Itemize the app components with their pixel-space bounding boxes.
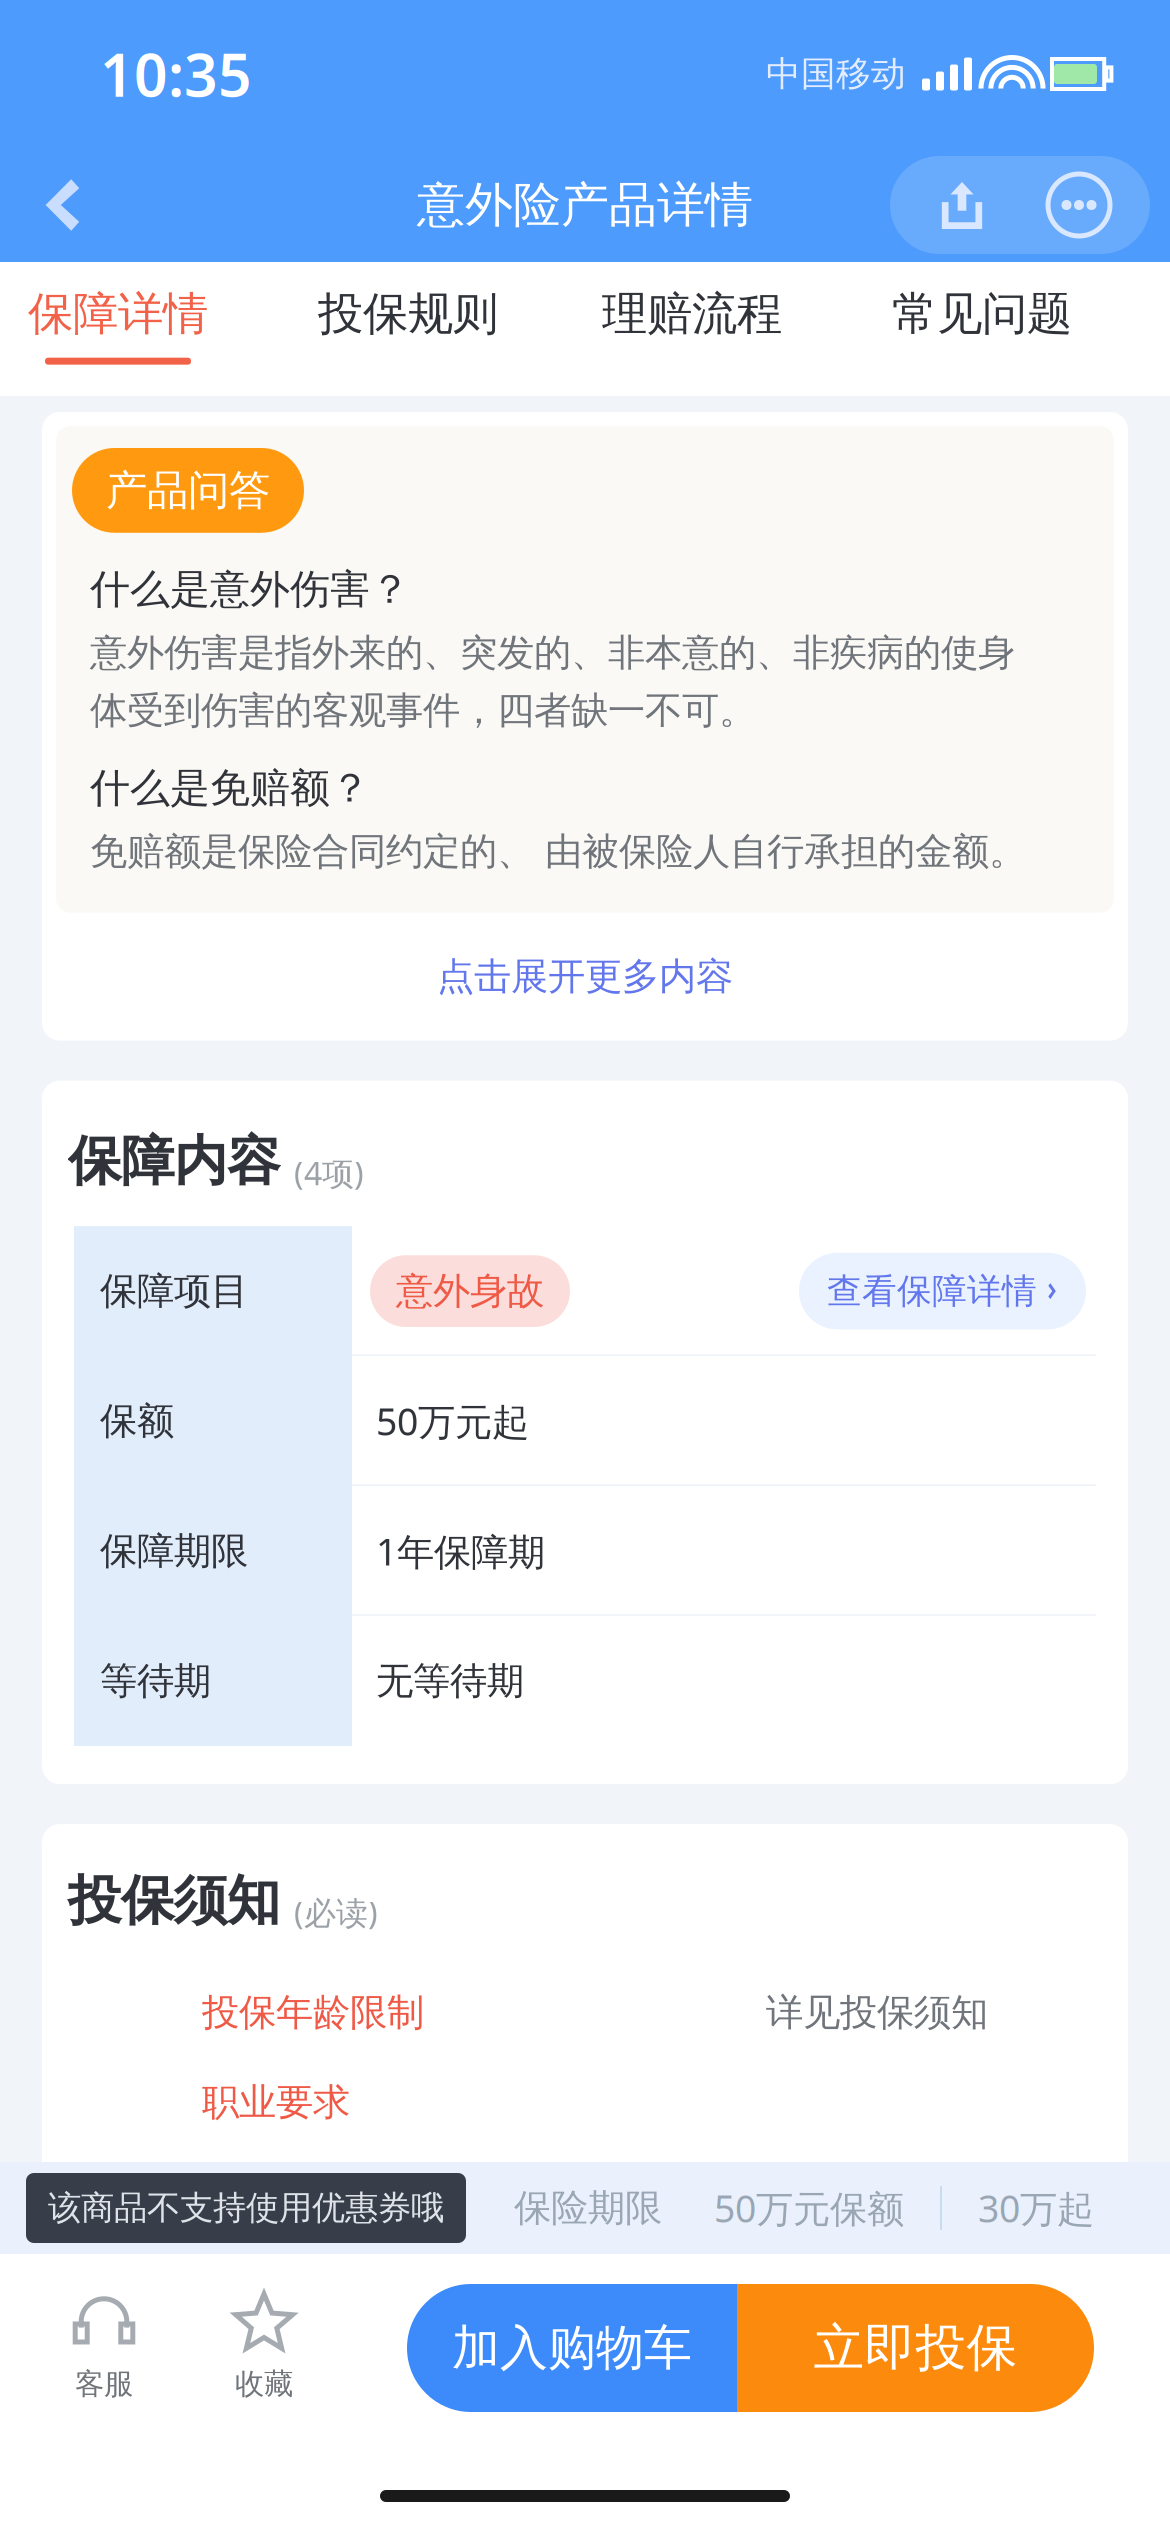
staticText: 意外险产品详情 bbox=[417, 175, 753, 234]
button[interactable]: Share bbox=[890, 157, 1020, 253]
button[interactable]: 常见问题 bbox=[804, 262, 1160, 396]
button[interactable]: 收藏 bbox=[184, 2263, 344, 2433]
staticText: 50万元起 bbox=[376, 1396, 529, 1446]
staticText: 产品问答 bbox=[106, 465, 270, 516]
staticText: 意外伤害是指外来的、突发的、非本意的、非疾病的使身 bbox=[90, 630, 1015, 676]
staticText: 1年保障期 bbox=[376, 1526, 545, 1576]
staticText: (必读) bbox=[294, 1891, 378, 1934]
staticText: 保障详情 bbox=[28, 286, 208, 342]
button[interactable]: 保障详情 bbox=[0, 262, 236, 396]
staticText: 10:35 bbox=[100, 35, 252, 113]
staticText: 该商品不支持使用优惠券哦 bbox=[48, 2187, 444, 2228]
staticText: 加入购物车 bbox=[452, 2318, 692, 2377]
staticText: 30万起 bbox=[978, 2183, 1094, 2233]
staticText: 详见投保须知 bbox=[766, 1990, 988, 2035]
staticText: 投保须知 bbox=[68, 1868, 280, 1934]
staticText: 理赔流程 bbox=[602, 286, 782, 342]
staticText: 常见问题 bbox=[892, 286, 1072, 342]
staticText: 保障期限 bbox=[100, 1528, 248, 1574]
staticText: 投保年龄限制 bbox=[202, 1990, 424, 2035]
staticText: 客服 bbox=[75, 2366, 133, 2402]
button[interactable]: 产品问答 bbox=[56, 426, 304, 533]
staticText: 50万元保额 bbox=[714, 2183, 904, 2233]
staticText: 保障项目 bbox=[100, 1268, 248, 1314]
staticText: 体受到伤害的客观事件，四者缺一不可。 bbox=[90, 688, 756, 734]
staticText: 投保规则 bbox=[318, 286, 498, 342]
button[interactable]: 点击展开更多内容 bbox=[85, 913, 1085, 1041]
staticText: 中国移动 bbox=[766, 53, 906, 95]
staticText: (4项) bbox=[294, 1152, 364, 1194]
staticText: 什么是意外伤害？ bbox=[90, 565, 410, 614]
button[interactable]: Back bbox=[0, 151, 116, 259]
button[interactable]: 立即投保 bbox=[737, 2284, 1094, 2412]
button[interactable]: 投保规则 bbox=[236, 262, 580, 396]
staticText: 职业要求 bbox=[202, 2079, 350, 2125]
staticText: 什么是免赔额？ bbox=[90, 764, 370, 813]
staticText: 意外身故 bbox=[396, 1268, 544, 1314]
button[interactable]: 查看保障详情 bbox=[799, 1253, 1086, 1329]
staticText: 保障内容 bbox=[68, 1129, 280, 1194]
button[interactable]: More bbox=[1020, 156, 1150, 254]
staticText: 点击展开更多内容 bbox=[437, 954, 733, 1000]
staticText: 立即投保 bbox=[813, 2317, 1017, 2379]
staticText: 无等待期 bbox=[376, 1658, 524, 1704]
staticText: 收藏 bbox=[235, 2366, 293, 2402]
staticText: 查看保障详情 bbox=[827, 1270, 1037, 1312]
button[interactable]: 理赔流程 bbox=[580, 262, 804, 396]
button[interactable]: 加入购物车 bbox=[407, 2284, 737, 2412]
button[interactable]: 客服 bbox=[24, 2263, 184, 2433]
staticText: 免赔额是保险合同约定的、 由被保险人自行承担的金额。 bbox=[90, 829, 1026, 875]
staticText: 保额 bbox=[100, 1398, 174, 1444]
staticText: 等待期 bbox=[100, 1658, 211, 1704]
staticText: 保险期限 bbox=[514, 2185, 662, 2231]
